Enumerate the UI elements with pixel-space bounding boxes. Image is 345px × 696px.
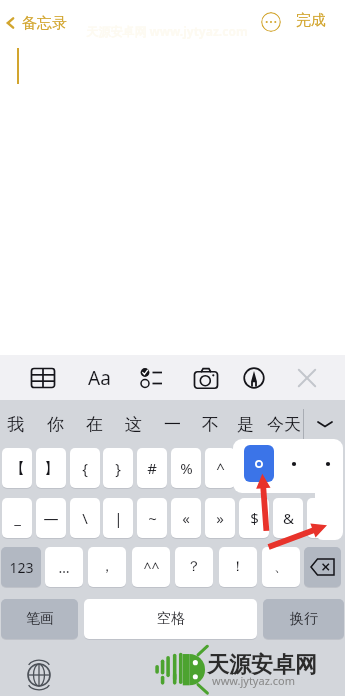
button[interactable]: \	[70, 498, 100, 538]
staticText: ^	[216, 458, 225, 478]
button[interactable]: 空格	[84, 599, 257, 639]
staticText: |	[114, 508, 123, 528]
staticText: 完成	[296, 11, 326, 30]
staticText: «	[182, 508, 190, 528]
button[interactable]: ~	[137, 498, 167, 538]
staticText: www.jytyaz.com	[212, 673, 295, 688]
button[interactable]: %	[171, 448, 201, 488]
staticText: 天源安卓网	[207, 651, 317, 679]
button[interactable]: ·	[273, 448, 303, 488]
staticText: ！	[231, 558, 245, 576]
staticText: 不	[202, 414, 219, 435]
staticText: \	[82, 508, 88, 528]
staticText: 你	[47, 414, 64, 435]
staticText: %	[180, 458, 193, 478]
button[interactable]: Switch keyboard	[27, 663, 51, 687]
button[interactable]: &	[273, 498, 303, 538]
staticText: 备忘录	[22, 14, 67, 33]
staticText: »	[216, 508, 224, 528]
staticText: #	[147, 458, 157, 478]
button[interactable]: Camera	[190, 362, 222, 394]
button[interactable]: 这	[116, 400, 150, 448]
button[interactable]: —	[36, 498, 66, 538]
button[interactable]: 。	[239, 448, 269, 488]
button[interactable]: 换行	[263, 599, 344, 639]
button[interactable]: 、	[262, 547, 300, 587]
staticText: 我	[7, 414, 24, 435]
button[interactable]: Backspace	[304, 547, 341, 587]
staticText: 这	[125, 414, 142, 435]
staticText: ~	[148, 508, 157, 528]
button[interactable]: 今天	[267, 400, 303, 448]
staticText: Aa	[88, 365, 111, 391]
staticText: }	[115, 458, 121, 478]
button[interactable]: 你	[38, 400, 72, 448]
staticText: 、	[274, 558, 288, 576]
staticText: 今天	[267, 414, 301, 435]
staticText: 空格	[157, 610, 185, 628]
button[interactable]	[307, 498, 337, 538]
button[interactable]: ^^	[132, 547, 170, 587]
staticText: 在	[86, 414, 103, 435]
button[interactable]: 】	[36, 448, 66, 488]
button[interactable]: 我	[0, 400, 32, 448]
staticText: ？	[187, 558, 201, 576]
button[interactable]: ·	[307, 448, 337, 488]
button[interactable]: |	[103, 498, 133, 538]
button[interactable]: ？	[175, 547, 213, 587]
button[interactable]: Checklist	[136, 362, 168, 394]
staticText: —	[43, 508, 59, 528]
staticText: 天源安卓网 www.jytyaz.com	[86, 23, 248, 39]
staticText: 】	[44, 459, 59, 478]
staticText: 【	[10, 459, 25, 478]
staticText: &	[283, 508, 294, 528]
button[interactable]: ^	[205, 448, 235, 488]
button[interactable]: 【	[2, 448, 32, 488]
staticText: …	[58, 558, 70, 577]
button[interactable]: 笔画	[1, 599, 78, 639]
button[interactable]: Dot	[279, 445, 309, 482]
staticText: 。	[247, 459, 262, 478]
staticText: 笔画	[26, 610, 54, 628]
button[interactable]: 在	[77, 400, 111, 448]
button[interactable]: ！	[219, 547, 257, 587]
staticText: ，	[100, 558, 114, 576]
staticText: {	[82, 458, 88, 478]
button[interactable]: 123	[1, 547, 41, 587]
button[interactable]: 一	[155, 400, 189, 448]
button[interactable]: _	[2, 498, 32, 538]
button[interactable]: Markup	[238, 362, 270, 394]
staticText: 123	[9, 558, 34, 577]
staticText: 是	[237, 414, 254, 435]
button[interactable]: Expand candidates	[310, 400, 340, 448]
button[interactable]: 是	[228, 400, 262, 448]
staticText: 换行	[290, 610, 318, 628]
staticText: $	[250, 508, 259, 528]
button[interactable]: 备忘录	[2, 10, 67, 36]
button[interactable]: Middle dot	[313, 445, 343, 482]
button[interactable]: }	[103, 448, 133, 488]
button[interactable]: …	[45, 547, 83, 587]
button[interactable]: #	[137, 448, 167, 488]
button[interactable]: 不	[193, 400, 227, 448]
staticText: ^^	[143, 558, 160, 577]
button[interactable]: {	[70, 448, 100, 488]
button[interactable]: ，	[88, 547, 126, 587]
button[interactable]: 完成	[296, 11, 326, 30]
button[interactable]: Aa	[81, 364, 117, 391]
staticText: _	[14, 508, 21, 528]
button[interactable]: $	[239, 498, 269, 538]
button[interactable]: More options	[261, 12, 281, 32]
button[interactable]: Close keyboard	[291, 362, 323, 394]
button[interactable]: «	[171, 498, 201, 538]
button[interactable]: »	[205, 498, 235, 538]
staticText: 一	[164, 414, 181, 435]
button[interactable]: Full stop	[244, 445, 274, 482]
button[interactable]: Table	[27, 362, 59, 394]
